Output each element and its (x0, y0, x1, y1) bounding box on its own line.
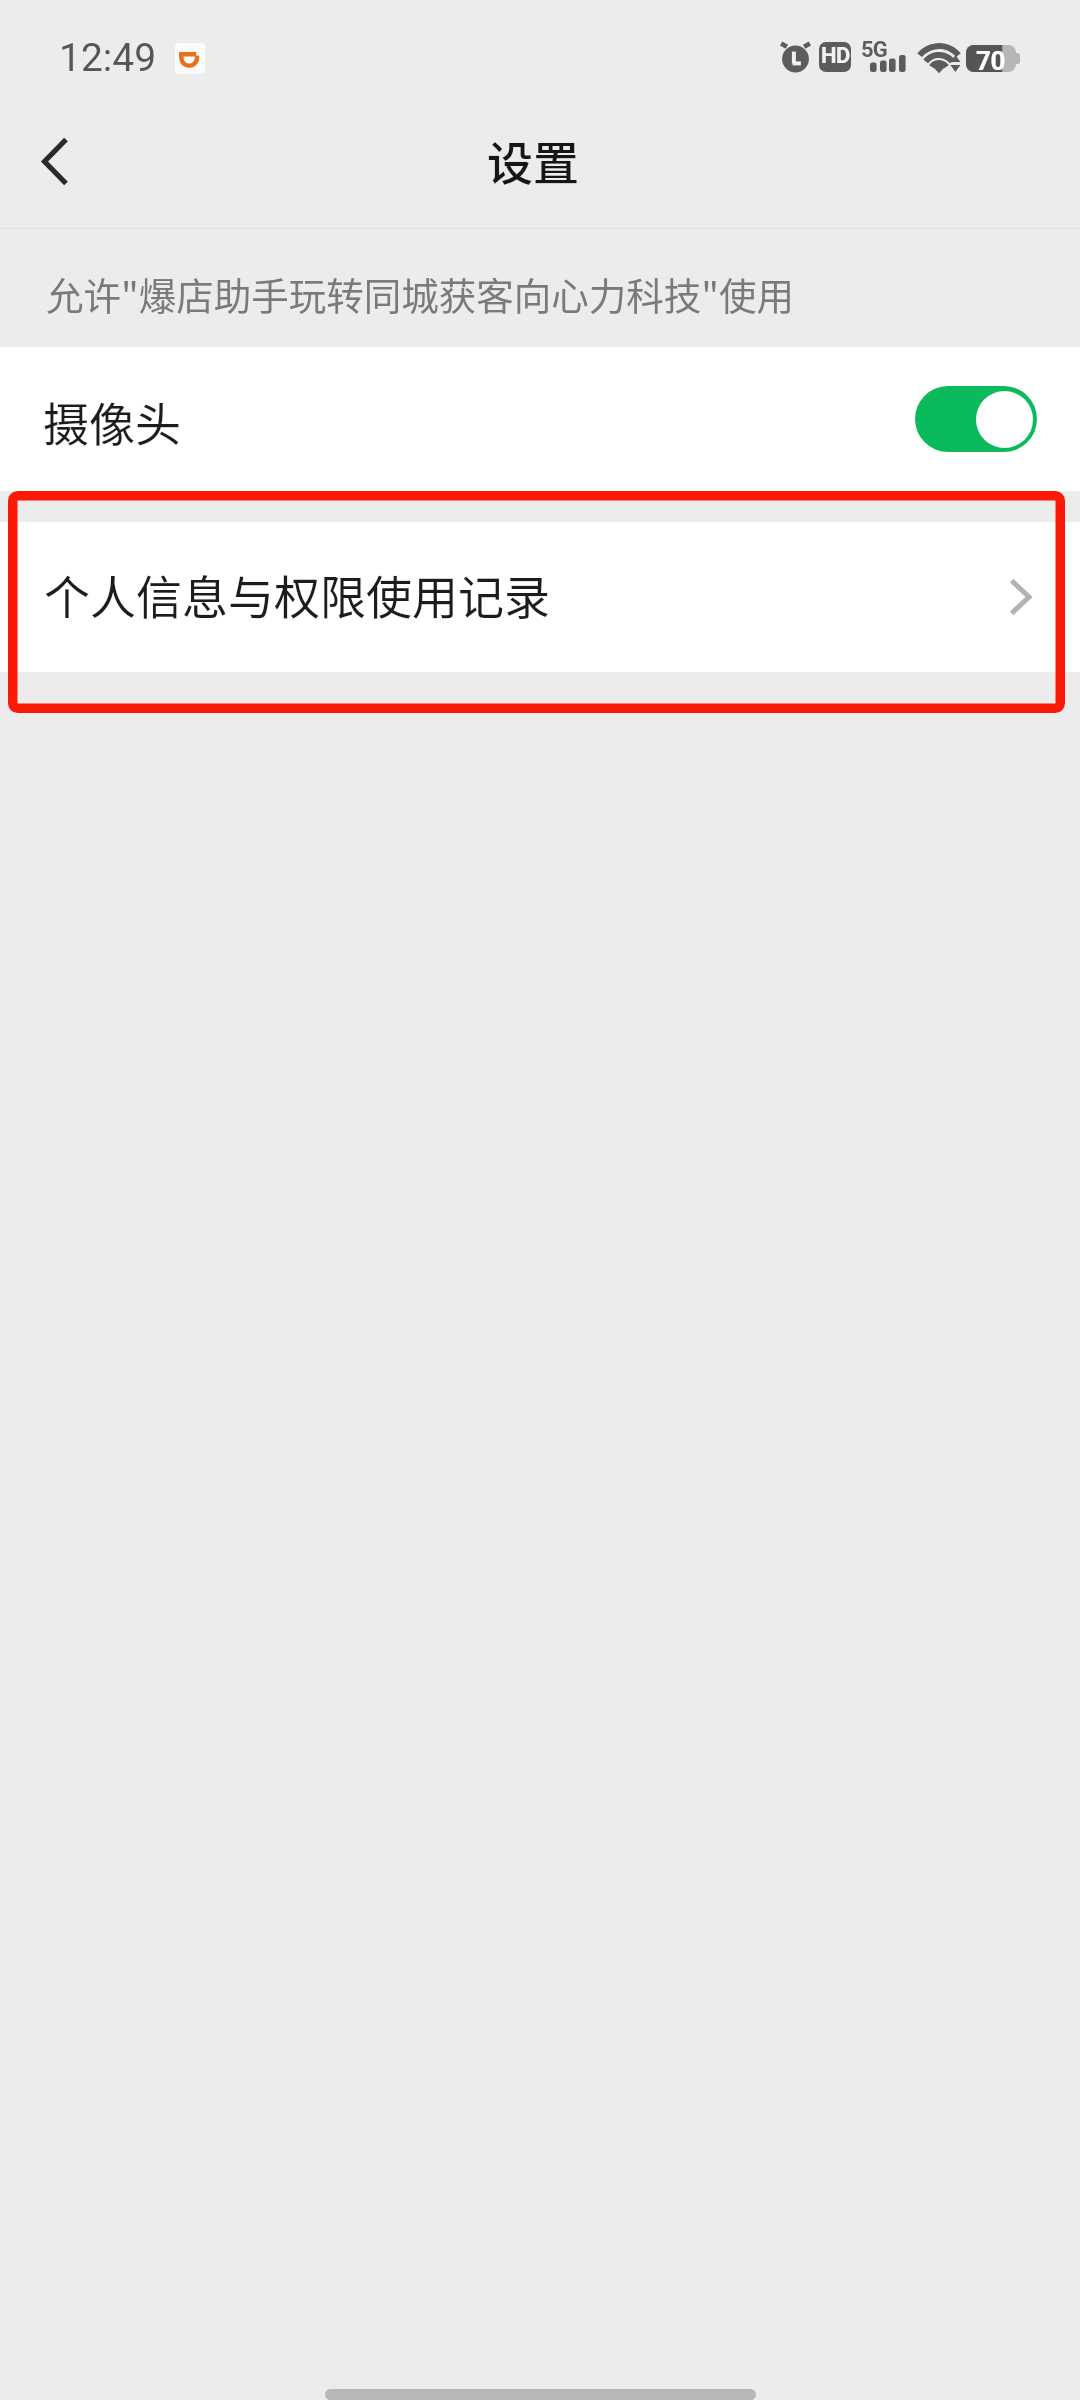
staticText: HD (821, 43, 850, 69)
staticText: 个人信息与权限使用记录 (44, 561, 550, 628)
staticText: 设置 (487, 127, 579, 194)
button[interactable]: 个人信息与权限使用记录 (0, 522, 1080, 672)
button[interactable]: Back (7, 113, 103, 209)
staticText: 摄像头 (43, 388, 181, 455)
button[interactable]: Camera permission toggle (915, 386, 1037, 452)
staticText: 5G (861, 37, 888, 63)
staticText: 允许"爆店助手玩转同城获客向心力科技"使用 (46, 266, 795, 320)
staticText: 12:49 (59, 35, 157, 81)
button[interactable]: 摄像头 (0, 347, 1080, 491)
staticText: 70 (976, 46, 1005, 74)
